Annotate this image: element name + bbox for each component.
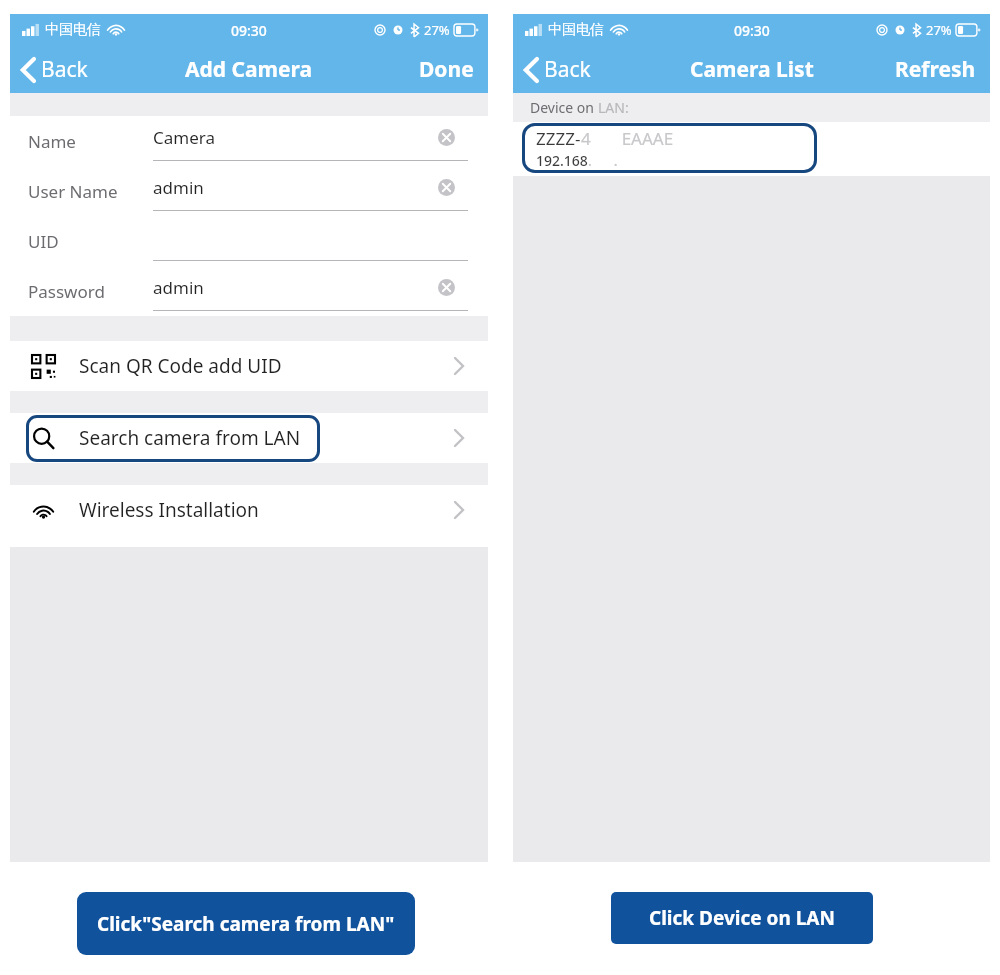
staticText: Camera List [690,55,814,84]
staticText: Scan QR Code add UID [79,353,282,379]
button[interactable]: Done [405,46,488,93]
button[interactable]: ZZZZ- [522,123,817,173]
button[interactable]: Clear User Name [433,174,459,200]
button[interactable]: Click Device on LAN [611,892,873,944]
staticText: 09:30 [231,21,267,40]
staticText: Refresh [895,55,976,84]
button[interactable]: Clear Name [433,124,459,150]
staticText: UID [28,230,59,253]
staticText: Click Device on LAN [649,905,835,931]
button[interactable]: Click"Search camera from LAN" [77,892,415,955]
staticText: Search camera from LAN [79,425,301,451]
staticText: Back [544,55,591,84]
staticText: Device on [530,98,598,117]
staticText: Click"Search camera from LAN" [97,911,395,937]
staticText: Camera [153,126,215,149]
staticText: 27% [424,21,450,39]
staticText: 4 EAAAE [581,127,674,150]
staticText: ZZZZ- [536,127,581,150]
staticText: Done [419,55,474,84]
staticText: Back [41,55,88,84]
button[interactable]: Scan QR Code add UID [10,341,488,391]
staticText: 192.168 [536,151,588,170]
button[interactable]: Wireless Installation [10,485,488,535]
button[interactable]: Back [513,46,601,93]
staticText: admin [153,276,204,299]
staticText: . . [588,151,618,170]
staticText: Name [28,130,76,153]
button[interactable]: Back [10,46,98,93]
staticText: 09:30 [734,21,770,40]
button[interactable]: Clear Password [433,274,459,300]
staticText: 27% [926,21,952,39]
staticText: User Name [28,180,118,203]
staticText: LAN: [598,98,629,117]
staticText: Add Camera [185,55,313,84]
staticText: 中国电信 [548,21,604,39]
button[interactable]: Refresh [881,46,990,93]
staticText: Password [28,280,105,303]
staticText: admin [153,176,204,199]
staticText: Wireless Installation [79,497,259,523]
button[interactable]: Search camera from LAN [10,413,488,463]
staticText: 中国电信 [45,21,101,39]
